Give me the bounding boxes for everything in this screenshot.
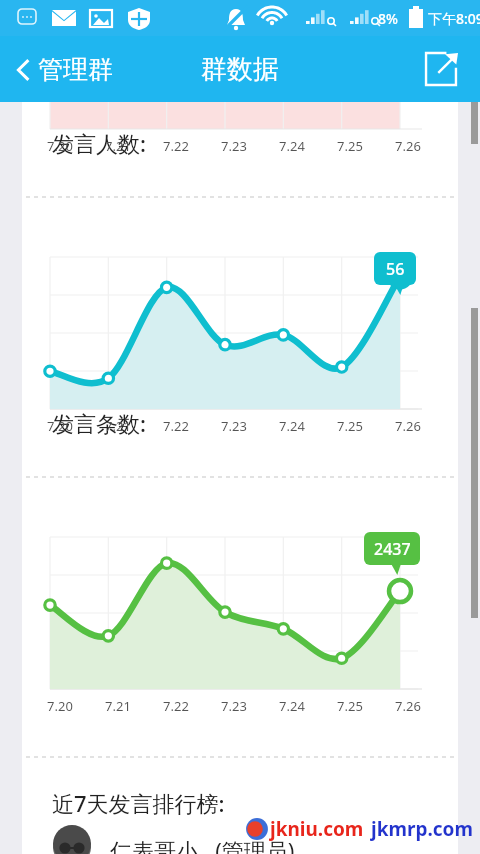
staticText: 发言人数:: [52, 128, 146, 158]
staticText: 7.24: [272, 417, 312, 435]
button[interactable]: Share: [416, 45, 466, 93]
staticText: 7.25: [330, 137, 370, 155]
staticText: 7.24: [272, 697, 312, 715]
staticText: 7.25: [330, 417, 370, 435]
staticText: 7.21: [98, 417, 138, 435]
button[interactable]: 管理群: [0, 46, 123, 93]
staticText: 群数据: [201, 53, 279, 86]
staticText: 7.23: [214, 697, 254, 715]
staticText: 7.23: [214, 137, 254, 155]
staticText: 7.26: [388, 417, 428, 435]
staticText: 发言条数:: [52, 408, 146, 438]
staticText: 7.20: [40, 697, 80, 715]
staticText: 管理群: [38, 54, 113, 85]
staticText: 2437: [374, 538, 411, 560]
staticText: 近7天发言排行榜:: [52, 788, 225, 818]
staticText: 56: [386, 258, 405, 280]
staticText: 7.26: [388, 697, 428, 715]
staticText: 7.22: [156, 417, 196, 435]
staticText: 下午8:09: [428, 9, 480, 28]
staticText: 7.22: [156, 137, 196, 155]
staticText: 7.20: [40, 417, 80, 435]
staticText: 8%: [378, 9, 398, 28]
staticText: 7.21: [98, 137, 138, 155]
staticText: 7.24: [272, 137, 312, 155]
staticText: 7.26: [388, 137, 428, 155]
staticText: 7.20: [40, 137, 80, 155]
staticText: 7.22: [156, 697, 196, 715]
staticText: 7.23: [214, 417, 254, 435]
staticText: 7.25: [330, 697, 370, 715]
staticText: 仁表哥小 (管理员): [110, 835, 295, 854]
staticText: jkmrp.com: [371, 816, 474, 842]
staticText: 7.21: [98, 697, 138, 715]
staticText: jkniu.com: [270, 816, 364, 842]
